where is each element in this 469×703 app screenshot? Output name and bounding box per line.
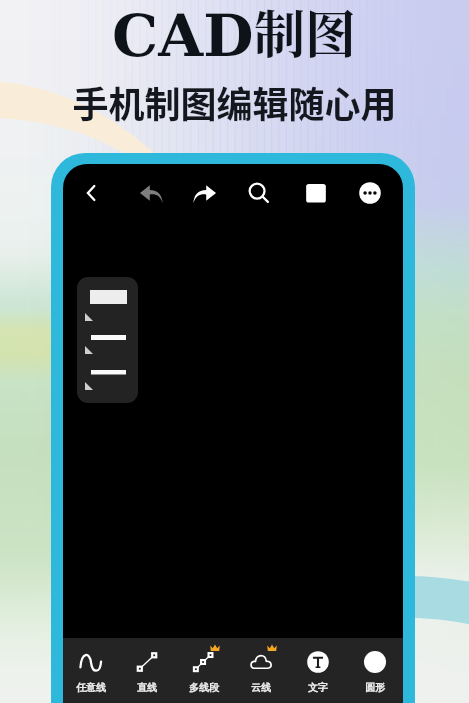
staticText: 直线	[137, 681, 157, 694]
button[interactable]: Redo	[185, 173, 225, 213]
button[interactable]: Undo	[131, 173, 171, 213]
button[interactable]: More options	[350, 173, 390, 213]
button[interactable]: Back	[71, 173, 111, 213]
button[interactable]: 云线	[232, 638, 289, 703]
button[interactable]: 圆形	[346, 638, 403, 703]
button[interactable]: Search	[239, 173, 279, 213]
staticText: 任意线	[76, 681, 106, 694]
staticText: 圆形	[365, 681, 385, 694]
staticText: 文字	[308, 681, 328, 694]
staticText: 手机制图编辑随心用	[0, 76, 469, 128]
staticText: 多线段	[189, 681, 219, 694]
button[interactable]: 任意线	[63, 638, 119, 703]
button[interactable]: 文字	[289, 638, 346, 703]
button[interactable]: 多线段	[175, 638, 232, 703]
staticText: 云线	[251, 681, 271, 694]
button[interactable]: 直线	[119, 638, 175, 703]
button[interactable]	[77, 277, 138, 403]
button[interactable]: Layers	[296, 173, 336, 213]
staticText: CAD	[112, 2, 254, 70]
staticText: 制图	[254, 0, 357, 67]
